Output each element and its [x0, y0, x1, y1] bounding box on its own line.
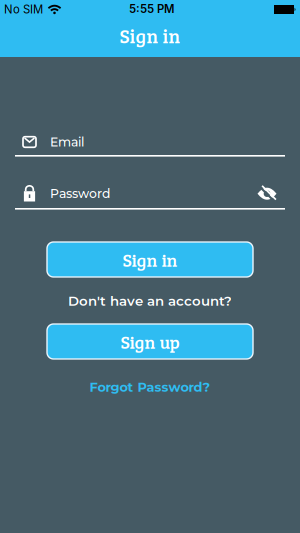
staticText: 5:55 PM: [129, 2, 174, 16]
button[interactable]: Sign in: [47, 242, 253, 277]
staticText: Password: [50, 186, 110, 201]
staticText: Sign up: [120, 329, 179, 354]
button[interactable]: Sign up: [47, 324, 253, 359]
button[interactable]: Email: [15, 132, 285, 157]
staticText: No SIM: [4, 3, 43, 16]
button[interactable]: [257, 185, 277, 202]
staticText: Sign in: [122, 247, 177, 272]
staticText: Don't have an account?: [68, 293, 232, 309]
button[interactable]: Forgot Password?: [89, 379, 210, 395]
button[interactable]: Password: [15, 183, 285, 210]
staticText: Sign in: [119, 22, 180, 49]
staticText: Email: [50, 134, 84, 149]
staticText: Forgot Password?: [89, 379, 210, 395]
